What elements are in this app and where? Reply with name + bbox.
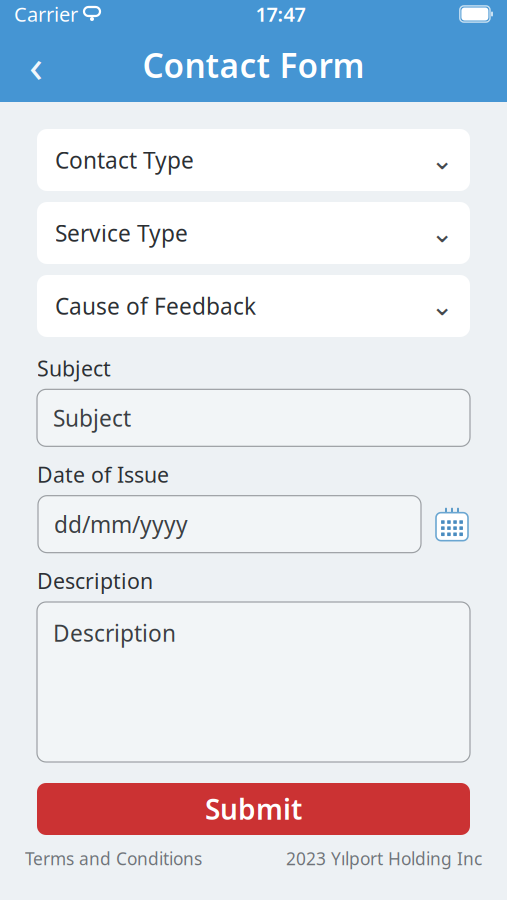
staticText: ⌄ — [431, 218, 453, 248]
button[interactable]: Service Type — [37, 202, 470, 264]
button[interactable]: Pick date — [435, 506, 469, 542]
staticText: Contact Type — [55, 145, 194, 175]
staticText: Cause of Feedback — [55, 291, 256, 321]
button[interactable]: Terms and Conditions — [25, 847, 202, 870]
staticText: dd/mm/yyyy — [54, 509, 188, 539]
staticText: Description — [53, 618, 176, 648]
staticText: Submit — [205, 790, 302, 828]
staticText: Description — [37, 567, 153, 595]
staticText: Subject — [53, 403, 131, 433]
button[interactable]: Contact Type — [37, 129, 470, 191]
staticText: Subject — [37, 354, 111, 382]
staticText: ⌄ — [431, 291, 453, 321]
staticText: ⌄ — [431, 145, 453, 175]
staticText: Contact Form — [142, 43, 364, 87]
staticText: Carrier — [14, 1, 78, 27]
staticText: Date of Issue — [37, 460, 169, 489]
button[interactable]: Back — [14, 43, 58, 87]
staticText: 2023 Yılport Holding Inc — [286, 847, 482, 870]
staticText: Terms and Conditions — [25, 847, 202, 870]
button[interactable]: Submit — [37, 783, 470, 835]
staticText: ‹ — [29, 35, 43, 95]
staticText: 17:47 — [255, 1, 305, 27]
staticText: Service Type — [55, 218, 188, 248]
button[interactable]: Cause of Feedback — [37, 275, 470, 337]
